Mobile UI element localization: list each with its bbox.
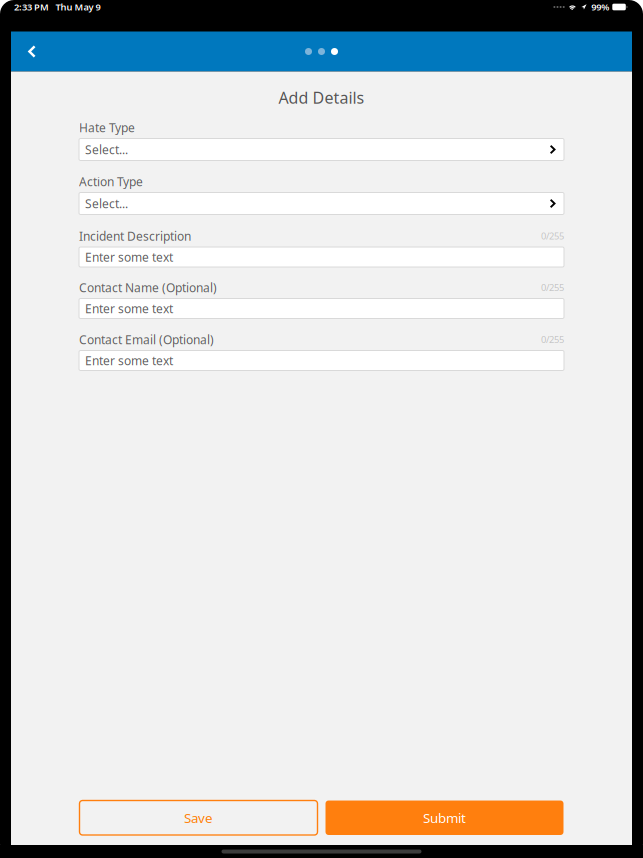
staticText: Hate Type: [79, 119, 135, 135]
button[interactable]: Back: [11, 31, 53, 71]
staticText: Incident Description: [79, 228, 191, 244]
staticText: Submit: [423, 809, 466, 827]
staticText: 0/255: [541, 230, 564, 242]
staticText: Select...: [85, 141, 128, 157]
staticText: Action Type: [79, 173, 143, 189]
button[interactable]: Save: [79, 800, 317, 835]
staticText: 0/255: [541, 333, 564, 346]
staticText: Enter some text: [85, 249, 173, 265]
staticText: Contact Email (Optional): [79, 331, 214, 347]
staticText: Add Details: [278, 87, 364, 108]
button[interactable]: Select...: [79, 138, 564, 160]
button[interactable]: Enter some text: [79, 247, 564, 267]
staticText: 0/255: [541, 281, 564, 294]
staticText: Contact Name (Optional): [79, 279, 217, 295]
staticText: Enter some text: [85, 352, 173, 368]
button[interactable]: Enter some text: [79, 350, 564, 370]
staticText: Select...: [85, 195, 128, 211]
staticText: Thu May 9: [55, 1, 100, 13]
button[interactable]: Select...: [79, 192, 564, 214]
staticText: 2:33 PM: [14, 1, 49, 13]
staticText: Save: [184, 809, 213, 827]
staticText: 99%: [591, 1, 609, 13]
button[interactable]: Enter some text: [79, 298, 564, 318]
staticText: Enter some text: [85, 300, 173, 316]
button[interactable]: Submit: [325, 800, 563, 835]
